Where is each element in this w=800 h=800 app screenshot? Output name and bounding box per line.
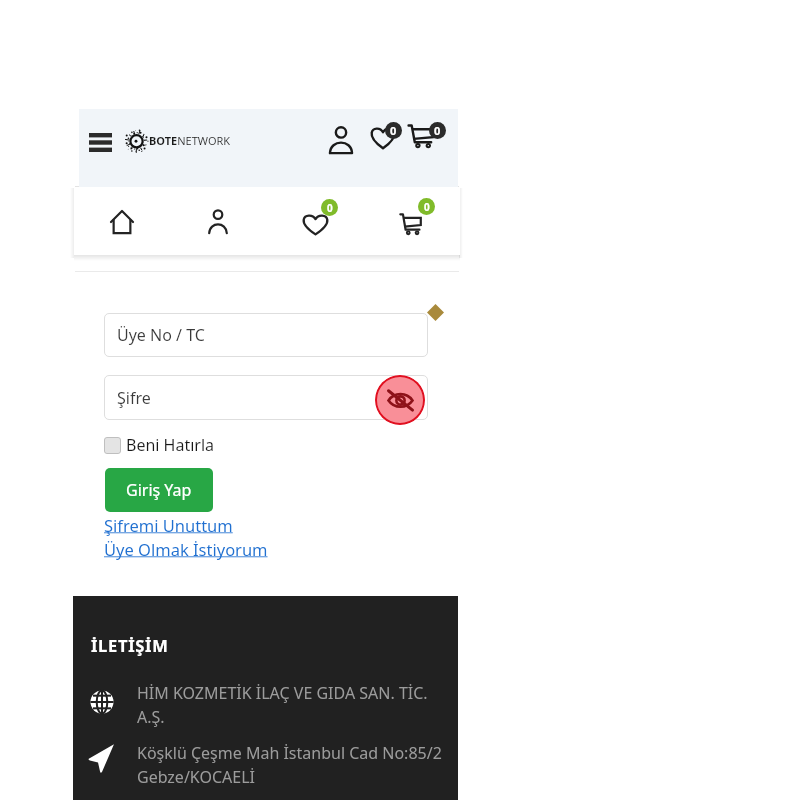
button[interactable]: Menu — [80, 122, 120, 162]
staticText: 0 — [327, 201, 333, 215]
button[interactable]: Profile — [170, 187, 266, 255]
button[interactable]: Şifremi Unuttum — [104, 514, 233, 536]
staticText: 0 — [434, 123, 441, 138]
staticText: HİM KOZMETİK İLAÇ VE GIDA SAN. TİC. A.Ş. — [137, 682, 443, 728]
button[interactable]: Cart — [363, 187, 460, 255]
button[interactable]: BOTENETWORK — [123, 123, 231, 157]
button[interactable]: Üye Olmak İstiyorum — [104, 538, 268, 560]
button[interactable]: Favourites — [362, 122, 408, 168]
button[interactable]: Giriş Yap — [105, 468, 213, 512]
staticText: Beni Hatırla — [126, 434, 215, 456]
staticText: Şifre — [117, 387, 151, 409]
staticText: Şifremi Unuttum — [104, 514, 233, 536]
staticText: Giriş Yap — [126, 479, 192, 501]
button[interactable]: Show password — [375, 375, 425, 425]
button[interactable]: Cart — [401, 122, 449, 170]
staticText: Üye No / TC — [117, 324, 205, 346]
button[interactable]: Account — [321, 120, 361, 160]
button[interactable]: Şifre — [104, 375, 428, 420]
staticText: 0 — [390, 123, 397, 138]
button[interactable]: Favourites — [266, 187, 363, 255]
staticText: İLETİŞİM — [91, 634, 169, 656]
button[interactable]: Beni Hatırla — [104, 434, 215, 456]
staticText: 0 — [424, 200, 430, 214]
button[interactable]: Home — [74, 187, 170, 255]
staticText: BOTENETWORK — [149, 133, 231, 148]
staticText: Köşklü Çeşme Mah İstanbul Cad No:85/2 Ge… — [137, 742, 443, 788]
button[interactable]: Üye No / TC — [104, 313, 428, 357]
staticText: Üye Olmak İstiyorum — [104, 538, 268, 560]
